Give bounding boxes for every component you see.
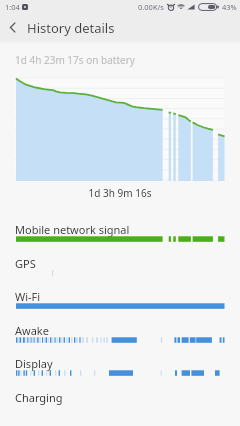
button[interactable]: Display: [0, 353, 240, 386]
button[interactable]: GPS: [0, 253, 240, 286]
staticText: GPS: [15, 256, 36, 271]
staticText: 0.00K/s: [138, 2, 164, 12]
staticText: Display: [15, 356, 53, 371]
staticText: History details: [27, 19, 115, 37]
staticText: 1:04: [5, 2, 20, 12]
button[interactable]: Mobile network signal: [0, 219, 240, 252]
button[interactable]: Wi-Fi: [0, 286, 240, 319]
staticText: 43%: [222, 2, 237, 12]
staticText: Awake: [15, 323, 49, 338]
staticText: Mobile network signal: [15, 222, 130, 237]
staticText: Wi-Fi: [15, 289, 41, 304]
staticText: Charging: [15, 390, 63, 405]
staticText: 1d 3h 9m 16s: [0, 186, 240, 200]
button[interactable]: Back: [0, 14, 27, 41]
staticText: 1d 4h 23m 17s on battery: [15, 53, 135, 67]
button[interactable]: Awake: [0, 320, 240, 353]
button[interactable]: Charging: [0, 387, 240, 420]
